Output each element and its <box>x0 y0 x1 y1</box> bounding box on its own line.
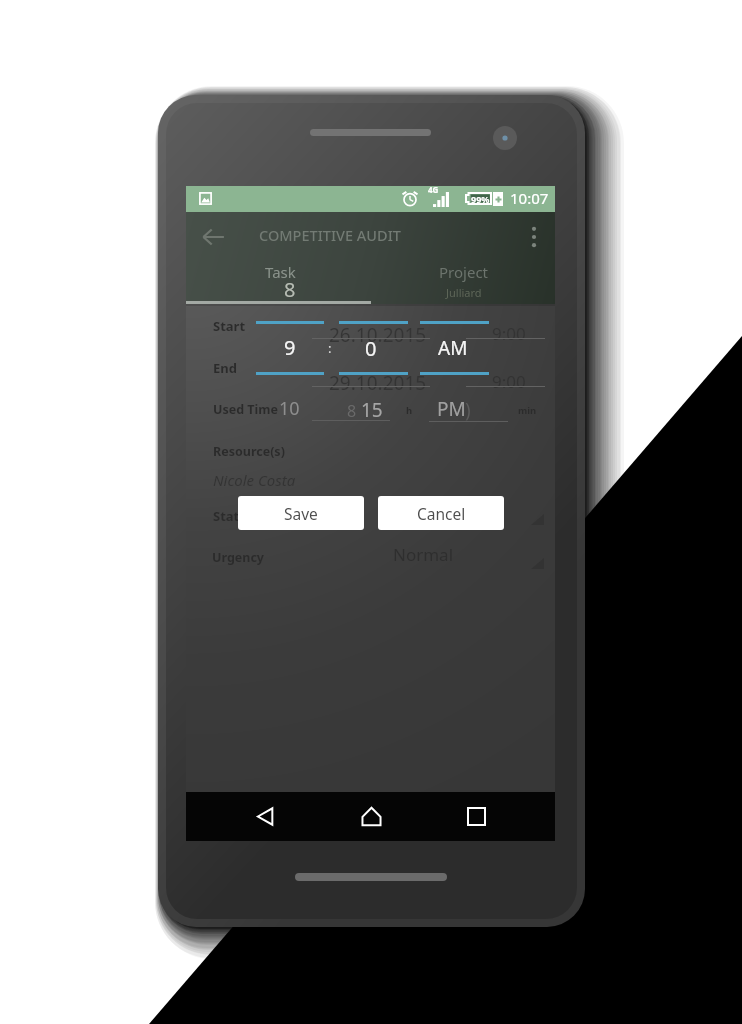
staticText: AM <box>438 335 468 361</box>
staticText: 9:00 <box>492 322 526 345</box>
staticText: Normal <box>393 543 454 566</box>
staticText: Cancel <box>417 503 466 524</box>
staticText: 26.10.2015 <box>329 322 427 348</box>
staticText: 4G <box>428 184 439 195</box>
staticText: 10 <box>279 396 300 421</box>
staticText: 10:07 <box>510 188 549 208</box>
staticText: 0 <box>365 335 377 362</box>
button[interactable]: Recents <box>450 792 502 841</box>
staticText: 8 <box>347 400 357 422</box>
staticText: Urgency <box>212 549 264 566</box>
button[interactable]: Cancel <box>378 496 504 530</box>
button[interactable]: More options <box>524 225 544 249</box>
staticText: Nicole Costa <box>213 470 296 490</box>
staticText: 15 <box>361 397 383 423</box>
staticText: 29.10.2015 <box>329 370 427 396</box>
button[interactable]: Home <box>345 792 397 841</box>
staticText: Used Time <box>213 401 278 418</box>
button[interactable] <box>371 252 555 304</box>
button[interactable] <box>186 252 371 304</box>
staticText: h <box>406 404 413 417</box>
staticText: Project <box>439 262 488 282</box>
staticText: min <box>518 404 537 417</box>
staticText: Save <box>284 503 318 524</box>
staticText: COMPETITIVE AUDIT <box>259 225 401 245</box>
staticText: 8 <box>284 276 296 303</box>
staticText: Stat <box>213 507 240 525</box>
button[interactable]: Save <box>238 496 364 530</box>
staticText: 9:00 <box>492 370 526 393</box>
staticText: 9 <box>284 334 296 361</box>
staticText: Task <box>265 262 296 282</box>
staticText: : <box>328 339 332 357</box>
staticText: PM <box>437 396 466 422</box>
staticText: 99% <box>471 193 490 205</box>
staticText: Julliard <box>446 285 482 300</box>
staticText: Start <box>213 317 246 335</box>
staticText: ) <box>465 397 471 423</box>
button[interactable]: Back <box>239 792 291 841</box>
staticText: Resource(s) <box>213 443 285 460</box>
button[interactable]: Back <box>200 224 226 250</box>
staticText: End <box>213 359 237 377</box>
